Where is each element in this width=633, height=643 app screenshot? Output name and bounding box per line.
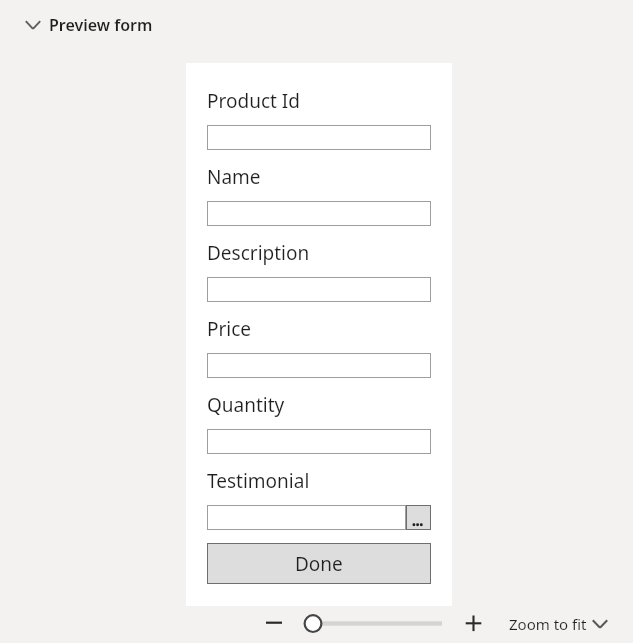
button[interactable]: [207, 277, 431, 302]
button[interactable]: [207, 125, 431, 150]
staticText: Name: [207, 164, 261, 190]
button[interactable]: [207, 505, 406, 530]
button[interactable]: Done: [207, 543, 431, 584]
staticText: Product Id: [207, 88, 300, 114]
staticText: Preview form: [49, 14, 153, 36]
button[interactable]: Zoom in: [458, 611, 490, 635]
staticText: Price: [207, 316, 252, 342]
button[interactable]: Zoom level: [300, 611, 448, 635]
button[interactable]: [207, 429, 431, 454]
button[interactable]: [207, 353, 431, 378]
staticText: Testimonial: [207, 468, 310, 494]
button[interactable]: [207, 201, 431, 226]
button[interactable]: Zoom out: [258, 611, 290, 635]
staticText: Done: [295, 551, 343, 577]
staticText: Zoom to fit: [509, 614, 587, 634]
button[interactable]: Zoom to fit: [503, 610, 615, 638]
staticText: Quantity: [207, 392, 285, 418]
button[interactable]: Preview form: [0, 8, 163, 42]
staticText: Description: [207, 240, 310, 266]
button[interactable]: More options: [406, 505, 431, 530]
